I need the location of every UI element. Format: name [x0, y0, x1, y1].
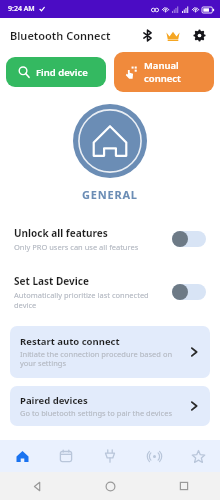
button[interactable]: Unlock all features — [172, 230, 206, 248]
staticText: connect — [144, 72, 181, 85]
button[interactable]: Paired devices — [10, 386, 210, 426]
button[interactable]: Unlock all features — [0, 224, 220, 254]
staticText: Set Last Device — [14, 274, 89, 288]
staticText: Paired devices — [20, 394, 88, 407]
button[interactable]: Schedule — [44, 440, 88, 472]
staticText: Find device — [36, 66, 88, 79]
staticText: Automatically prioritize last connected … — [14, 290, 164, 310]
button[interactable]: Home — [0, 440, 44, 472]
button[interactable]: Bluetooth — [134, 22, 160, 48]
button[interactable]: Restart auto connect — [10, 326, 210, 378]
staticText: Restart auto connect — [20, 335, 120, 348]
button[interactable]: Manual — [114, 52, 214, 92]
button[interactable]: Favorites — [176, 440, 220, 472]
staticText: Manual — [144, 59, 179, 72]
button[interactable]: Home — [74, 472, 147, 500]
button[interactable]: Devices — [88, 440, 132, 472]
button[interactable]: Settings — [186, 22, 212, 48]
button[interactable]: Find device — [6, 57, 106, 87]
staticText: 9:24 AM — [8, 4, 35, 14]
button[interactable]: Set Last Device — [172, 283, 206, 301]
staticText: Only PRO users can use all features — [14, 242, 139, 252]
button[interactable]: Signal — [132, 440, 176, 472]
staticText: Bluetooth Connect — [10, 28, 111, 43]
staticText: Go to bluetooth settings to pair the dev… — [20, 408, 172, 418]
button[interactable]: Set Last Device — [0, 272, 220, 312]
button[interactable]: Premium — [160, 22, 186, 48]
button[interactable]: Recents — [147, 472, 220, 500]
staticText: Unlock all features — [14, 226, 108, 240]
button[interactable]: Back — [0, 472, 74, 500]
staticText: Initiate the connection procedure based … — [20, 349, 188, 369]
staticText: GENERAL — [82, 187, 138, 202]
button[interactable]: General — [73, 104, 147, 178]
